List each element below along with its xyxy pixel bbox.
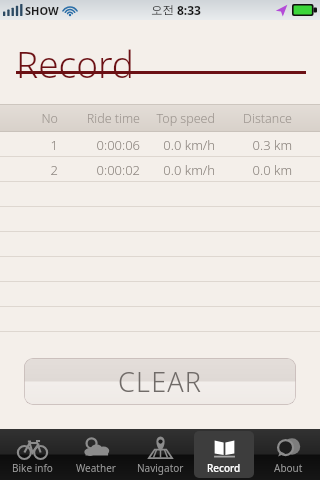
staticText: About: [274, 461, 303, 475]
staticText: 0.0 km: [252, 161, 292, 179]
staticText: Distance: [243, 110, 292, 127]
staticText: 0:00:06: [96, 136, 140, 154]
staticText: 0.3 km: [252, 136, 292, 154]
staticText: Record: [207, 461, 241, 475]
button[interactable]: About: [258, 431, 318, 478]
button[interactable]: CLEAR: [24, 358, 296, 405]
staticText: Navigator: [137, 461, 184, 475]
staticText: Top speed: [156, 110, 215, 127]
staticText: Ride time: [86, 110, 140, 127]
staticText: 8:33: [177, 2, 201, 18]
button[interactable]: Bike info: [2, 431, 62, 478]
staticText: No: [41, 110, 58, 127]
staticText: 오전: [151, 2, 177, 18]
staticText: CLEAR: [118, 363, 203, 400]
staticText: 1: [50, 136, 58, 154]
staticText: 2: [50, 161, 58, 179]
staticText: 0:00:02: [96, 161, 140, 179]
button[interactable]: Weather: [66, 431, 126, 478]
staticText: Weather: [76, 461, 116, 475]
button[interactable]: Record: [194, 431, 254, 478]
staticText: SHOW: [25, 3, 59, 18]
staticText: Record: [16, 38, 135, 88]
staticText: 0.0 km/h: [163, 161, 215, 179]
staticText: Bike info: [12, 461, 53, 475]
staticText: 0.0 km/h: [163, 136, 215, 154]
button[interactable]: Navigator: [130, 431, 190, 478]
